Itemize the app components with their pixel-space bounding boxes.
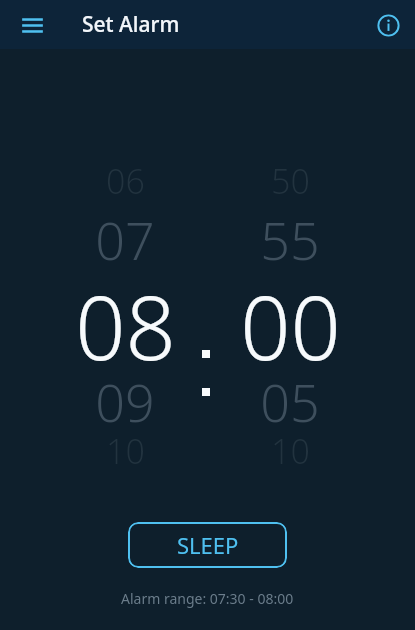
staticText: 00 bbox=[240, 266, 341, 366]
button[interactable]: SLEEP bbox=[128, 522, 287, 568]
staticText: 09 bbox=[95, 366, 155, 428]
staticText: 06 bbox=[106, 158, 145, 204]
button[interactable]: Info bbox=[366, 3, 410, 47]
button[interactable]: Open navigation menu bbox=[9, 2, 55, 48]
staticText: 08 bbox=[75, 266, 176, 366]
staticText: 55 bbox=[260, 204, 320, 266]
button[interactable]: Hours, 08 bbox=[50, 158, 200, 474]
staticText: 10 bbox=[271, 428, 310, 474]
staticText: 05 bbox=[260, 366, 320, 428]
staticText: Alarm range: 07:30 - 08:00 bbox=[121, 589, 294, 608]
button[interactable]: Minutes, 00 bbox=[215, 158, 365, 474]
staticText: 10 bbox=[106, 428, 145, 474]
staticText: 07 bbox=[95, 204, 155, 266]
staticText: Set Alarm bbox=[82, 10, 180, 39]
staticText: SLEEP bbox=[177, 530, 239, 560]
staticText: 50 bbox=[271, 158, 310, 204]
